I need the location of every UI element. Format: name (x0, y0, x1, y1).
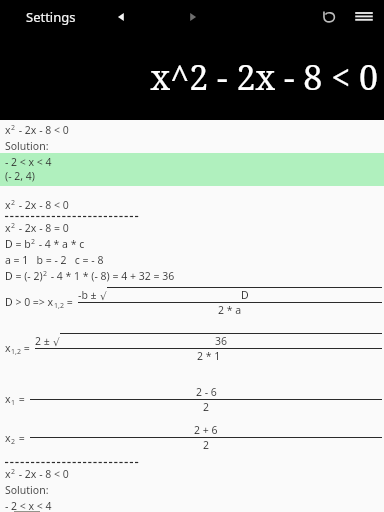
staticText: - 2 < x < 4 (5, 499, 52, 512)
staticText: - 4 * a * c (36, 237, 85, 251)
staticText: -b ± (78, 288, 100, 302)
staticText: 2 ± (35, 334, 53, 348)
staticText: 2 * 1 (197, 349, 221, 363)
button[interactable]: Settings (22, 4, 80, 30)
staticText: x (5, 392, 11, 406)
button[interactable]: Previous (110, 6, 132, 28)
staticText: 2 (11, 221, 16, 231)
staticText: x (5, 123, 11, 137)
staticText: 2 (43, 269, 48, 279)
staticText: Settings (26, 8, 76, 26)
staticText: 2 (203, 438, 210, 452)
staticText: 2 (11, 123, 16, 133)
staticText: x (5, 467, 11, 481)
staticText: Solution: (5, 483, 49, 497)
staticText: = (64, 295, 76, 309)
staticText: 2 (11, 198, 16, 208)
staticText: 2 (203, 400, 210, 414)
staticText: 2 * a (218, 303, 242, 317)
staticText: = (16, 392, 28, 406)
staticText: D > 0 => x (5, 295, 54, 309)
staticText: x (5, 431, 11, 445)
staticText: - 2x - 8 < 0 (16, 198, 69, 212)
staticText: D = (- 2) (5, 269, 43, 283)
staticText: D = b (5, 237, 31, 251)
staticText: √ (100, 290, 107, 302)
staticText: √ (53, 336, 60, 348)
button[interactable]: Next (182, 6, 204, 28)
staticText: 1 (11, 398, 16, 408)
staticText: a = 1 b = - 2 c = - 8 (5, 253, 104, 267)
staticText: 2 + 6 (194, 423, 218, 437)
staticText: 2 (11, 437, 16, 447)
staticText: (- 2, 4) (5, 169, 35, 183)
staticText: x (5, 198, 11, 212)
staticText: 36 (215, 334, 228, 348)
staticText: 2 (31, 237, 36, 247)
staticText: D (241, 288, 249, 302)
button[interactable]: Menu (354, 7, 384, 27)
button[interactable]: Undo (316, 4, 342, 30)
staticText: 2 - 6 (196, 385, 217, 399)
staticText: = (16, 431, 28, 445)
staticText: - 2 < x < 4 (5, 155, 52, 169)
staticText: 1,2 (54, 301, 64, 311)
staticText: - 2x - 8 < 0 (16, 123, 69, 137)
staticText: Solution: (5, 139, 49, 153)
staticText: - 2x - 8 < 0 (16, 467, 69, 481)
staticText: - 2x - 8 = 0 (16, 221, 69, 235)
staticText: 1,2 (11, 347, 21, 357)
staticText: = (21, 341, 33, 355)
staticText: x (5, 341, 11, 355)
staticText: x (5, 221, 11, 235)
staticText: 2 (11, 467, 16, 477)
staticText: - 4 * 1 * (- 8) = 4 + 32 = 36 (48, 269, 175, 283)
staticText: x^2 - 2x - 8 < 0 (150, 54, 378, 100)
